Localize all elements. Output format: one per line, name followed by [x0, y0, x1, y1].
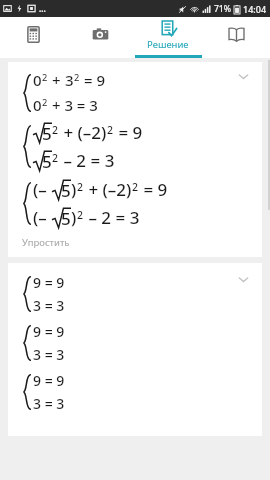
staticText: – 2 = 3 [84, 206, 140, 229]
staticText: 2 [52, 151, 59, 165]
staticText: 5 [61, 179, 71, 201]
staticText: 9 = 9 [33, 322, 65, 341]
staticText: 14:04 [243, 3, 267, 15]
staticText: ) [71, 206, 77, 229]
button[interactable]: Camera [67, 17, 134, 58]
staticText: 3 [65, 70, 74, 90]
staticText: = 9 [114, 121, 143, 144]
staticText: + [48, 70, 65, 90]
staticText: ... [39, 3, 46, 14]
staticText: 2 [132, 180, 139, 194]
staticText: 2 [77, 180, 84, 194]
staticText: = 9 [139, 178, 168, 201]
staticText: 9 = 9 [33, 371, 65, 390]
button[interactable]: Book [202, 17, 270, 58]
staticText: 3 = 3 [33, 296, 65, 315]
staticText: 2 [42, 71, 48, 84]
staticText: + (–2) [84, 178, 132, 201]
staticText: 2 [52, 123, 59, 137]
staticText: + 3 = 3 [48, 95, 98, 115]
button[interactable]: Свернуть [237, 70, 250, 83]
staticText: 2 [107, 123, 114, 137]
staticText: – 2 = 3 [59, 149, 115, 172]
staticText: Решение [147, 38, 189, 51]
staticText: 0 [33, 95, 42, 115]
staticText: (– [33, 206, 52, 229]
staticText: 3 = 3 [33, 394, 65, 413]
staticText: 5 [61, 207, 71, 229]
button[interactable]: Решение [134, 17, 202, 58]
button[interactable]: Calculator [0, 17, 67, 58]
staticText: 2 [42, 96, 48, 109]
staticText: Упростить [22, 236, 70, 249]
staticText: 0 [33, 70, 42, 90]
staticText: 5 [42, 122, 52, 144]
staticText: + (–2) [59, 121, 107, 144]
staticText: 2 [74, 71, 80, 84]
staticText: 3 = 3 [33, 345, 65, 364]
staticText: 5 [42, 150, 52, 172]
staticText: ) [71, 178, 77, 201]
staticText: (– [33, 178, 52, 201]
staticText: 2 [77, 208, 84, 222]
button[interactable]: Свернуть [237, 273, 250, 286]
button[interactable]: 9 = 9 [8, 263, 262, 436]
staticText: = 9 [80, 70, 105, 90]
staticText: 71% [214, 3, 231, 15]
button[interactable]: 0 [8, 62, 262, 257]
staticText: 9 = 9 [33, 273, 65, 292]
